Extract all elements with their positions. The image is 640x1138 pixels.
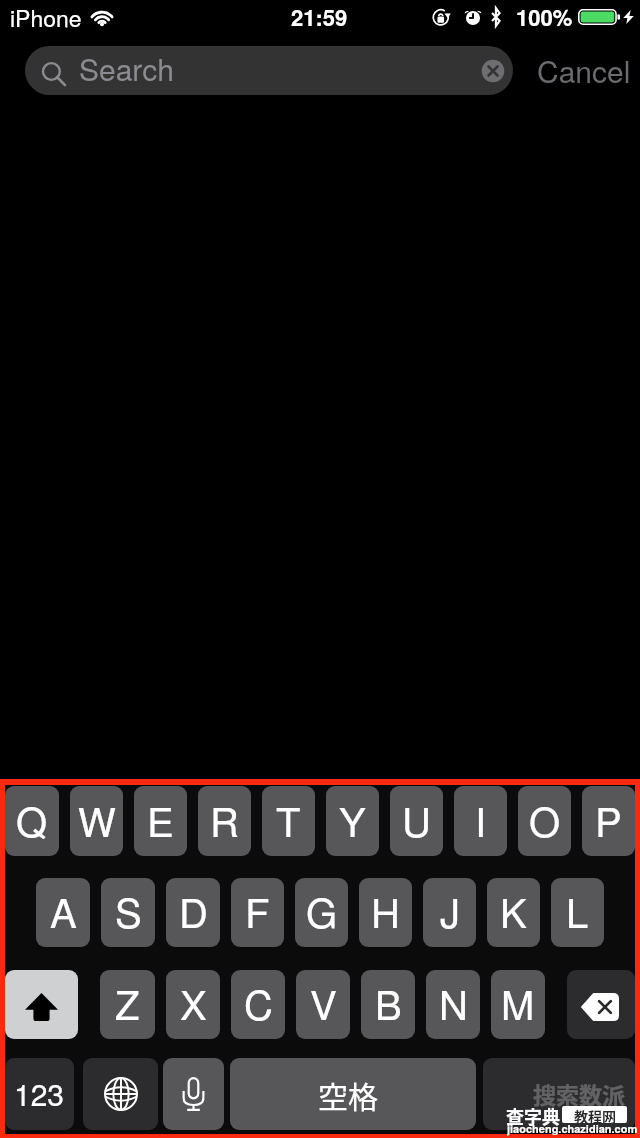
button[interactable]: K <box>487 878 540 947</box>
button[interactable] <box>483 1058 635 1130</box>
staticText: G <box>306 882 338 939</box>
staticText: iPhone <box>10 1 82 34</box>
button[interactable]: Backspace <box>567 970 635 1039</box>
button[interactable]: R <box>198 786 251 856</box>
staticText: X <box>180 974 207 1031</box>
staticText: N <box>439 974 468 1031</box>
staticText: K <box>500 882 527 939</box>
staticText: Q <box>16 791 48 848</box>
button[interactable]: P <box>582 786 635 856</box>
button[interactable]: Search <box>25 46 513 95</box>
staticText: E <box>147 791 174 848</box>
staticText: I <box>475 791 487 848</box>
staticText: jiaocheng.chazidian.com <box>507 1121 638 1137</box>
staticText: Z <box>115 974 140 1031</box>
staticText: P <box>595 791 622 848</box>
button[interactable]: J <box>423 878 476 947</box>
staticText: V <box>310 974 337 1031</box>
staticText: F <box>245 882 270 939</box>
button[interactable]: X <box>166 970 220 1039</box>
staticText: S <box>115 882 142 939</box>
button[interactable]: W <box>70 786 123 856</box>
button[interactable]: T <box>262 786 315 856</box>
button[interactable]: O <box>518 786 571 856</box>
staticText: 教程网 <box>574 1106 616 1123</box>
button[interactable]: S <box>101 878 155 947</box>
button[interactable]: U <box>390 786 443 856</box>
staticText: 21:59 <box>291 1 348 33</box>
staticText: Y <box>339 791 366 848</box>
staticText: M <box>501 974 535 1031</box>
staticText: Search <box>79 47 174 90</box>
button[interactable]: N <box>426 970 480 1039</box>
staticText: 100% <box>516 1 573 33</box>
staticText: D <box>179 882 208 939</box>
button[interactable]: H <box>359 878 412 947</box>
button[interactable]: F <box>231 878 284 947</box>
button[interactable]: 空格 <box>230 1058 476 1130</box>
staticText: Cancel <box>537 49 631 92</box>
button[interactable]: L <box>551 878 604 947</box>
staticText: R <box>210 791 239 848</box>
button[interactable]: C <box>231 970 285 1039</box>
button[interactable]: Y <box>326 786 379 856</box>
staticText: T <box>276 791 301 848</box>
staticText: H <box>371 882 400 939</box>
button[interactable]: D <box>166 878 220 947</box>
button[interactable]: I <box>454 786 507 856</box>
button[interactable]: 123 <box>5 1058 74 1130</box>
button[interactable]: B <box>361 970 415 1039</box>
staticText: 123 <box>14 1072 65 1115</box>
staticText: 搜索数派 <box>533 1077 625 1110</box>
button[interactable]: Q <box>5 786 59 856</box>
button[interactable]: E <box>134 786 187 856</box>
staticText: 空格 <box>318 1073 378 1116</box>
staticText: U <box>402 791 431 848</box>
button[interactable]: Z <box>100 970 155 1039</box>
button[interactable]: Cancel <box>537 49 631 92</box>
staticText: C <box>244 974 273 1031</box>
staticText: 查字典 <box>506 1103 560 1129</box>
staticText: A <box>50 882 77 939</box>
staticText: W <box>78 791 116 848</box>
button[interactable]: Shift <box>5 970 78 1039</box>
button[interactable]: V <box>296 970 350 1039</box>
button[interactable]: A <box>36 878 90 947</box>
button[interactable]: G <box>295 878 348 947</box>
button[interactable]: Clear text <box>480 58 506 84</box>
button[interactable]: Next keyboard <box>83 1058 158 1130</box>
button[interactable]: Dictation <box>163 1058 224 1130</box>
staticText: J <box>440 882 460 939</box>
staticText: L <box>566 882 589 939</box>
button[interactable]: M <box>491 970 545 1039</box>
staticText: B <box>375 974 402 1031</box>
staticText: O <box>529 791 561 848</box>
